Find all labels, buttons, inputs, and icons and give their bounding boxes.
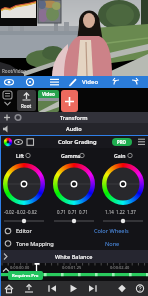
staticText: White Balance xyxy=(55,253,93,261)
button[interactable]: Video xyxy=(38,90,59,112)
button[interactable]: Requires Pro xyxy=(8,271,43,280)
button[interactable]: Video xyxy=(0,76,148,88)
button[interactable] xyxy=(61,90,78,112)
staticText: 0:00:02.40 xyxy=(110,265,130,270)
staticText: Color Grading xyxy=(58,138,97,146)
staticText: Gain xyxy=(114,152,126,159)
staticText: 0:00:01.25 xyxy=(62,265,82,270)
staticText: Lift xyxy=(16,152,25,159)
staticText: Video xyxy=(82,78,99,86)
button[interactable]: Root xyxy=(17,90,36,111)
staticText: Color Wheels xyxy=(94,227,129,235)
staticText: 1.14 1.22 1.37 xyxy=(105,209,136,215)
staticText: Root/Video xyxy=(2,68,26,74)
button[interactable]: Audio xyxy=(0,123,148,135)
staticText: Editor xyxy=(16,227,32,235)
staticText: Video xyxy=(42,91,55,97)
button[interactable]: Color Grading xyxy=(0,136,148,148)
button[interactable]: White Balance xyxy=(0,250,148,263)
staticText: PRO xyxy=(117,139,127,145)
button[interactable]: PRO xyxy=(112,138,132,146)
staticText: -0.02 -0.02 -0.02 xyxy=(4,209,37,215)
staticText: Transform xyxy=(60,114,88,122)
button[interactable]: Transform xyxy=(0,112,148,123)
staticText: Audio xyxy=(66,125,82,133)
staticText: 0:00:00.00 xyxy=(10,265,30,270)
staticText: 0.71 0.71 0.71 xyxy=(57,209,88,215)
staticText: Requires Pro xyxy=(12,273,39,279)
staticText: None xyxy=(105,240,120,248)
staticText: Gamma xyxy=(61,152,81,159)
staticText: Tone Mapping xyxy=(16,240,54,248)
staticText: Root xyxy=(21,103,32,109)
button[interactable]: Tone Mapping xyxy=(0,237,148,250)
button[interactable]: Editor xyxy=(0,225,148,237)
